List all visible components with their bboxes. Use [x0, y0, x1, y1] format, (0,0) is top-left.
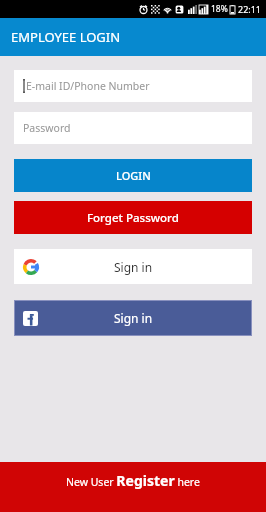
staticText: 18% — [211, 3, 228, 15]
button[interactable]: Password — [14, 112, 252, 144]
staticText: Sign in — [114, 259, 153, 275]
staticText: Password — [23, 121, 71, 135]
staticText: Sign in — [114, 310, 153, 326]
button[interactable]: Sign in — [14, 300, 252, 336]
button[interactable]: New User Register here — [0, 462, 266, 512]
staticText: EMPLOYEE LOGIN — [11, 28, 121, 46]
staticText: Forget Password — [87, 210, 179, 226]
button[interactable]: E-mail ID/Phone Number — [14, 70, 252, 102]
staticText: 22:11 — [238, 3, 262, 15]
staticText: LOGIN — [116, 168, 151, 183]
button[interactable]: Sign in — [14, 249, 252, 284]
staticText: New User Register here — [66, 471, 200, 490]
button[interactable]: LOGIN — [14, 159, 252, 192]
staticText: E-mail ID/Phone Number — [26, 79, 150, 93]
button[interactable]: Forget Password — [14, 201, 252, 234]
